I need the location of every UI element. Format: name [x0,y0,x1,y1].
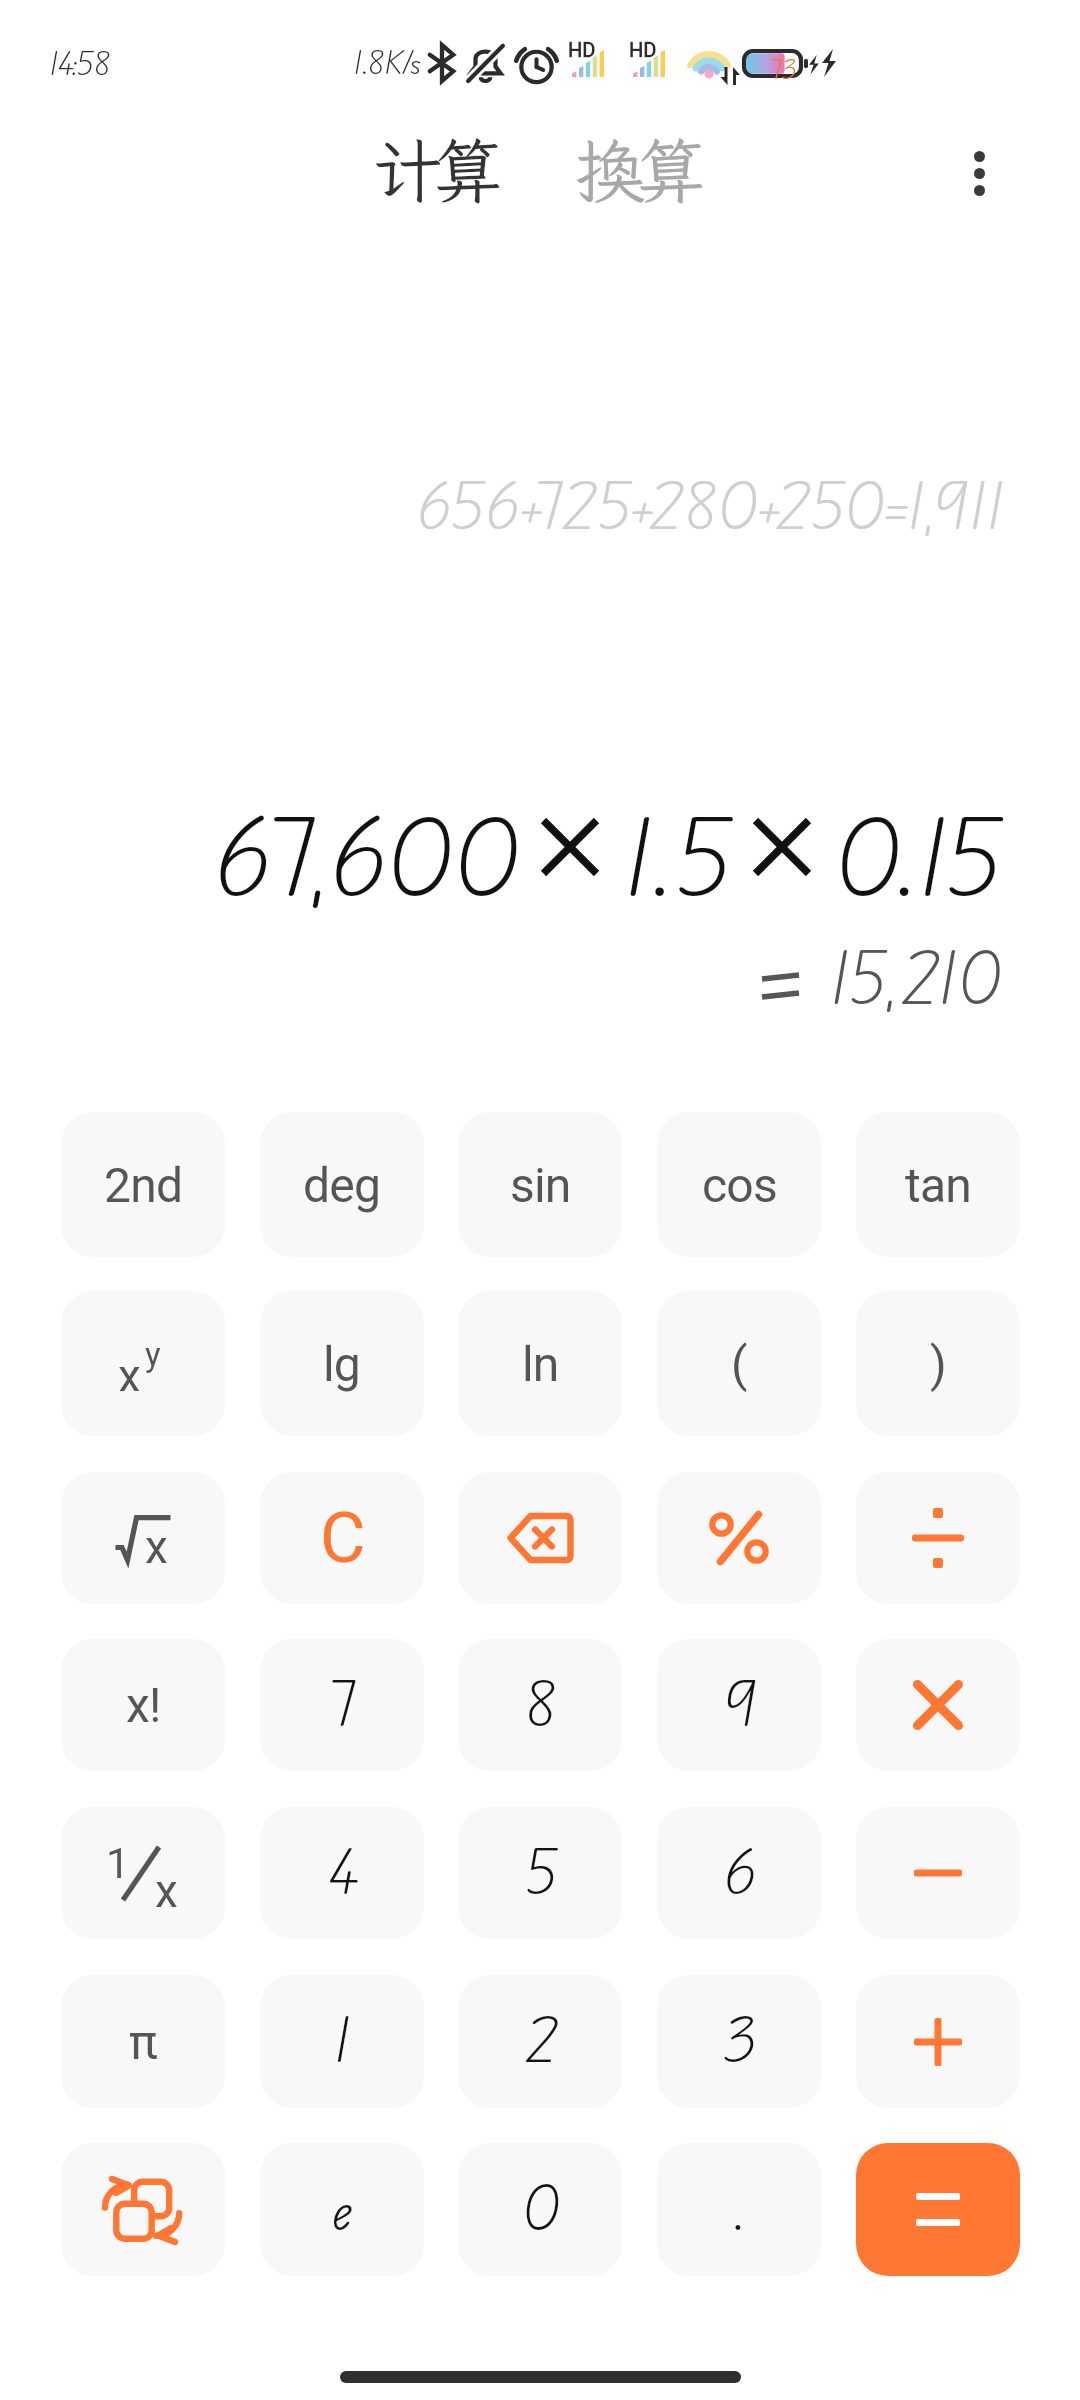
button[interactable]: Backspace [458,1472,622,1604]
button[interactable]: 8 [458,1639,622,1771]
staticText: lg [323,1336,361,1392]
button[interactable]: Unit converter [61,2143,225,2276]
staticText: 8 [523,1663,557,1748]
staticText: cos [702,1157,777,1213]
staticText: x! [126,1677,161,1733]
button[interactable]: 换算 [558,118,713,222]
staticText: x [118,1349,141,1391]
button[interactable]: 7 [260,1639,424,1771]
staticText: 0 [522,2167,559,2252]
staticText: 14:58 [49,42,111,87]
staticText: ( [731,1336,747,1392]
button[interactable]: C [260,1472,424,1604]
button[interactable]: Plus [856,1975,1020,2108]
button[interactable]: 4 [260,1807,424,1939]
staticText: 73 [770,51,797,89]
staticText: x [145,1520,168,1564]
button[interactable]: 1 [260,1975,424,2108]
staticText: 0.15 [834,785,1001,935]
button[interactable]: 3 [657,1975,821,2108]
button[interactable]: ln [458,1291,622,1436]
button[interactable]: 6 [657,1807,821,1939]
button[interactable]: 2 [458,1975,622,2108]
staticText: 5 [523,1831,557,1916]
staticText: x [155,1864,178,1917]
staticText: 67,600 [211,785,518,935]
button[interactable]: cos [657,1112,821,1257]
button[interactable]: deg [260,1112,424,1257]
staticText: 4 [326,1831,359,1916]
button[interactable]: Percent [657,1472,821,1604]
button[interactable]: Divide [856,1472,1020,1604]
staticText: 1.5 [622,785,730,935]
button[interactable]: ) [856,1291,1020,1436]
staticText: 6 [722,1831,756,1916]
staticText: 1 [106,1839,130,1888]
button[interactable]: . [657,2143,821,2276]
staticText: 1 [333,1999,351,2084]
button[interactable]: Minus [856,1807,1020,1939]
staticText: 1.8K/s [353,41,422,86]
staticText: e [332,2167,353,2252]
button[interactable]: x [61,1291,225,1436]
button[interactable]: Equals [856,2143,1020,2276]
button[interactable]: lg [260,1291,424,1436]
staticText: HD [629,38,657,61]
button[interactable]: 计算 [355,118,510,222]
button[interactable]: tan [856,1112,1020,1257]
staticText: 换算 [575,124,697,216]
button[interactable]: More options [924,118,1034,228]
staticText: 15,210 [829,931,1002,1030]
staticText: 656+725+280+250=1,911 [0,462,1005,552]
button[interactable]: sin [458,1112,622,1257]
staticText: C [320,1497,365,1579]
button[interactable]: Multiply [856,1639,1020,1771]
button[interactable]: 2nd [61,1112,225,1257]
button[interactable]: 5 [458,1807,622,1939]
staticText: y [145,1335,161,1374]
button[interactable]: 0 [458,2143,622,2276]
staticText: 9 [721,1663,758,1748]
staticText: 7 [329,1663,356,1748]
staticText: 2nd [104,1157,183,1213]
button[interactable]: x [61,1472,225,1604]
button[interactable]: x! [61,1639,225,1771]
staticText: ) [930,1336,946,1392]
button[interactable]: 1 [61,1807,225,1939]
staticText: 3 [722,1999,756,2084]
staticText: . [733,2167,746,2252]
staticText: sin [510,1157,571,1213]
staticText: HD [568,38,596,61]
staticText: deg [303,1157,381,1213]
button[interactable]: π [61,1975,225,2108]
button[interactable]: ( [657,1291,821,1436]
button[interactable]: e [260,2143,424,2276]
staticText: tan [905,1157,971,1213]
staticText: ln [522,1336,559,1392]
staticText: 计算 [372,124,494,216]
staticText: π [129,2014,157,2070]
staticText: 2 [524,1999,557,2084]
button[interactable]: 9 [657,1639,821,1771]
